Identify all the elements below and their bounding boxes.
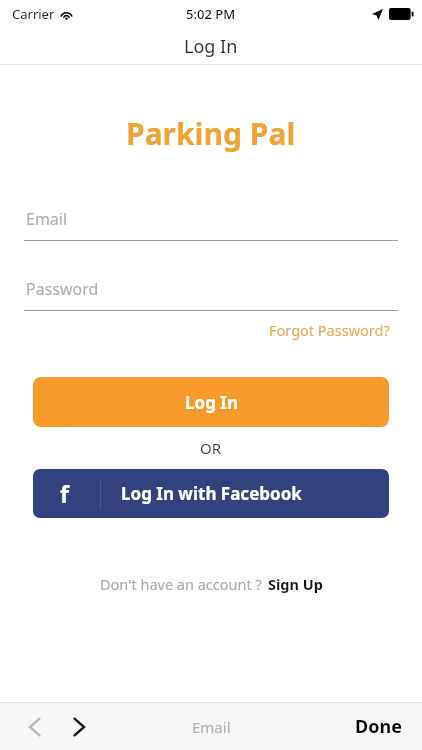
staticText: Email — [192, 717, 231, 737]
button[interactable]: Forgot Password? — [267, 318, 392, 342]
staticText: f — [60, 478, 69, 509]
button[interactable]: Done — [335, 704, 422, 749]
staticText: Log In — [184, 34, 238, 59]
staticText: Email — [26, 208, 68, 230]
staticText: Sign Up — [268, 574, 323, 594]
staticText: 5:02 PM — [186, 5, 236, 23]
button[interactable]: Previous field — [18, 710, 52, 744]
staticText: Parking Pal — [126, 113, 296, 154]
staticText: Done — [355, 714, 402, 739]
staticText: OR — [200, 438, 222, 458]
staticText: Password — [26, 278, 99, 300]
staticText: Carrier — [12, 5, 55, 23]
button[interactable]: f — [33, 469, 389, 518]
button[interactable]: Next field — [62, 710, 96, 744]
staticText: Log In — [185, 391, 238, 414]
staticText: Forgot Password? — [269, 320, 390, 340]
button[interactable]: Password — [24, 278, 398, 311]
staticText: Log In with Facebook — [121, 482, 302, 505]
button[interactable]: Email — [24, 208, 398, 241]
staticText: Don't have an account ? — [100, 574, 262, 594]
button[interactable]: Don't have an account ? — [0, 574, 422, 594]
button[interactable]: Log In — [33, 377, 389, 427]
